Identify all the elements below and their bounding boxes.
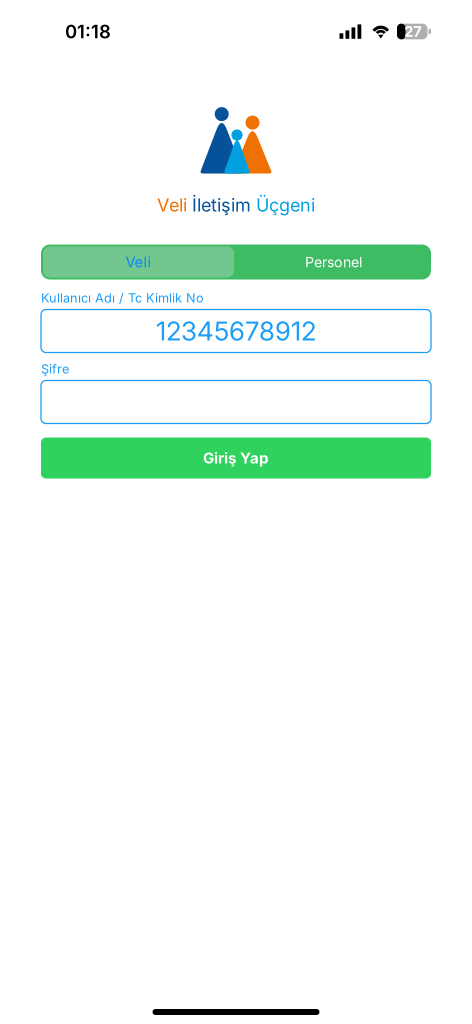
staticText: Veli — [125, 253, 151, 271]
staticText: Veli — [157, 194, 192, 216]
button[interactable]: Giriş Yap — [41, 437, 431, 478]
staticText: Personel — [305, 253, 362, 271]
staticText: Giriş Yap — [203, 449, 269, 467]
staticText: Üçgeni — [256, 194, 315, 216]
button[interactable]: Veli — [41, 244, 236, 279]
staticText: İletişim — [192, 194, 256, 216]
staticText: 12345678912 — [156, 315, 316, 347]
button[interactable]: Personel — [236, 244, 431, 279]
staticText: Kullanıcı Adı / Tc Kimlik No — [41, 290, 204, 305]
staticText: 01:18 — [65, 20, 111, 43]
staticText: 27 — [404, 23, 421, 40]
staticText: Şifre — [41, 361, 69, 376]
